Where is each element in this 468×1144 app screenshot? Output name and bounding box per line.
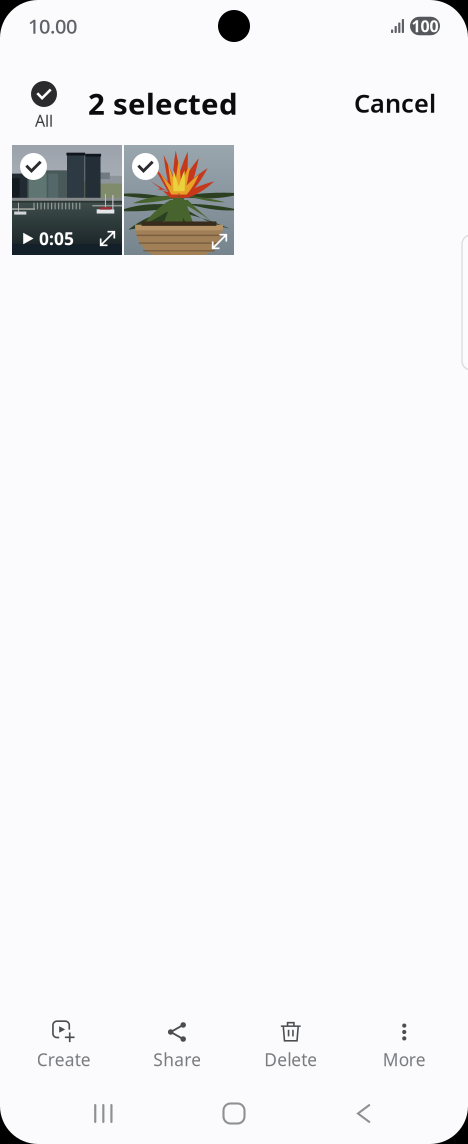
staticText: 10.00 xyxy=(28,13,77,39)
button[interactable]: Back xyxy=(299,1089,430,1137)
staticText: 2 selected xyxy=(88,84,238,123)
button[interactable]: More xyxy=(347,1011,461,1092)
staticText: Delete xyxy=(264,1048,317,1071)
staticText: All xyxy=(35,110,53,131)
button[interactable]: Recent apps xyxy=(38,1089,169,1137)
button[interactable]: 0:05 xyxy=(12,145,122,255)
button[interactable]: Cancel xyxy=(340,52,450,145)
button[interactable]: Home xyxy=(169,1089,299,1137)
staticText: 100 xyxy=(411,15,438,37)
button[interactable] xyxy=(124,145,234,255)
staticText: 0:05 xyxy=(39,227,74,250)
staticText: Create xyxy=(37,1048,91,1071)
staticText: More xyxy=(383,1048,426,1071)
button[interactable]: Delete xyxy=(234,1011,347,1092)
button[interactable]: Share xyxy=(120,1011,234,1092)
staticText: Cancel xyxy=(354,86,436,120)
button[interactable]: Create xyxy=(7,1011,120,1092)
staticText: Share xyxy=(153,1048,201,1071)
button[interactable]: All xyxy=(18,52,70,145)
